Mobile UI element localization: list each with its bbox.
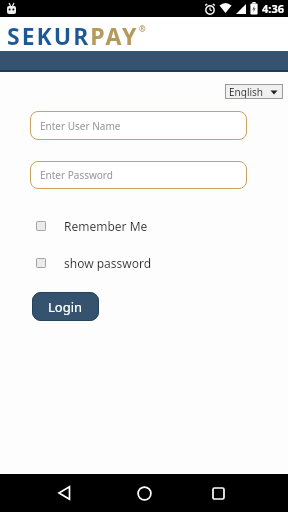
staticText: ®: [139, 23, 146, 34]
staticText: 4:36: [262, 1, 284, 16]
staticText: SEKURPAY: [7, 20, 139, 51]
button[interactable]: Enter Password: [30, 161, 247, 189]
staticText: Login: [48, 298, 83, 316]
button[interactable]: Enter User Name: [30, 111, 247, 140]
staticText: Enter User Name: [40, 119, 121, 133]
staticText: English: [229, 85, 264, 99]
button[interactable]: [45, 474, 85, 512]
staticText: Enter Password: [40, 168, 113, 182]
button[interactable]: [198, 474, 238, 512]
button[interactable]: show password: [36, 255, 152, 271]
staticText: Remember Me: [64, 218, 148, 234]
button[interactable]: [124, 474, 164, 512]
button[interactable]: Remember Me: [36, 218, 148, 234]
button[interactable]: Login: [32, 292, 99, 321]
button[interactable]: English: [225, 84, 283, 99]
staticText: show password: [64, 255, 152, 271]
